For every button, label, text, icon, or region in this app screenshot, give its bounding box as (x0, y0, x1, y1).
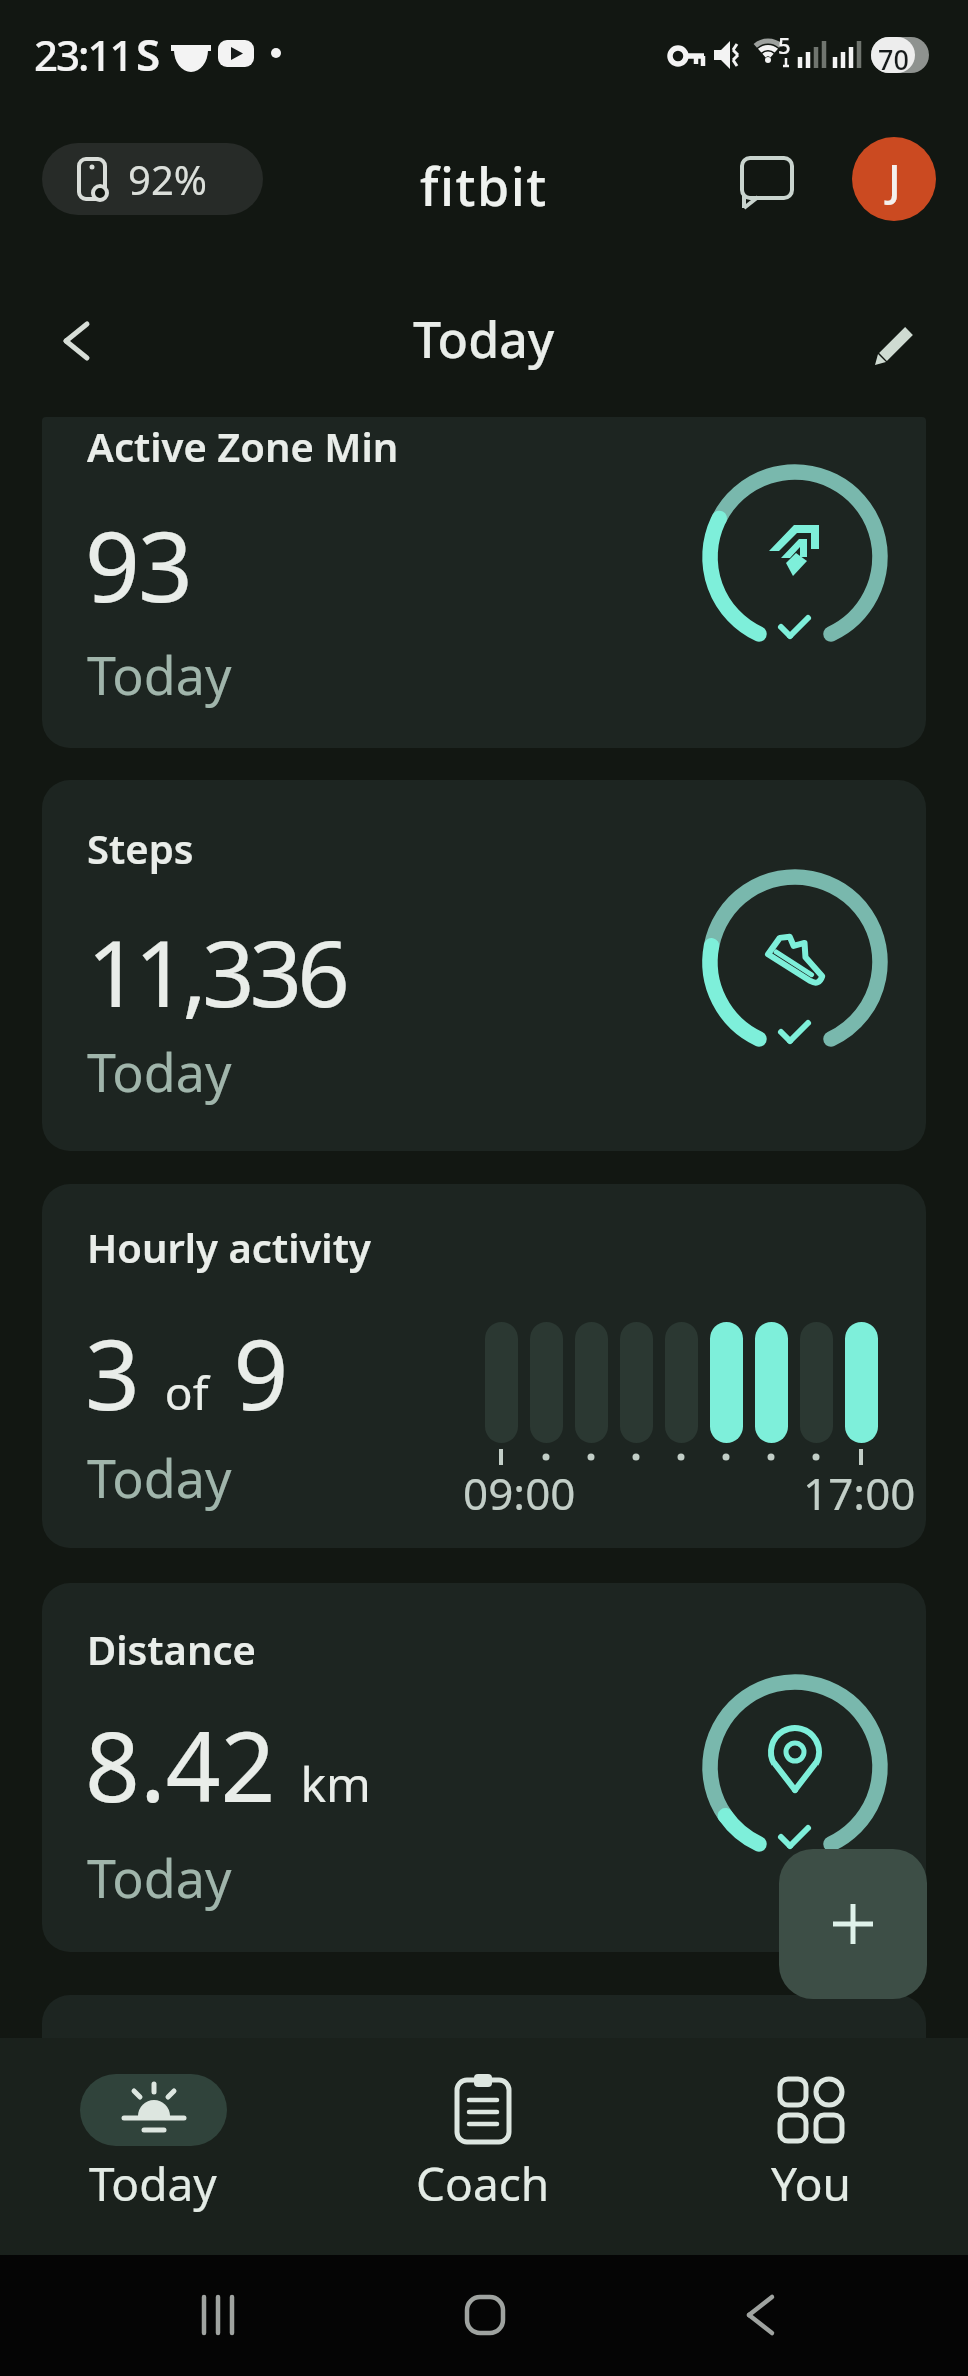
staticText: 3 of 9 (85, 1307, 289, 1438)
button[interactable] (50, 315, 102, 367)
button[interactable]: J (852, 137, 936, 221)
button[interactable] (42, 780, 926, 1151)
staticText: Today (87, 639, 232, 710)
staticText: Today (413, 305, 555, 373)
staticText: 92% (128, 152, 207, 206)
staticText: S (136, 24, 161, 84)
staticText: 17:00 (803, 1463, 916, 1523)
staticText: You (771, 2152, 851, 2215)
staticText: fitbit (420, 150, 548, 221)
staticText: Coach (416, 2152, 550, 2215)
staticText: Today (87, 1842, 232, 1913)
staticText: Distance (87, 1622, 256, 1676)
button[interactable] (862, 310, 926, 374)
button[interactable] (42, 1583, 926, 1952)
staticText: 8.42 km (85, 1699, 371, 1830)
button[interactable] (42, 1995, 926, 2055)
staticText: 93 (85, 499, 191, 630)
button[interactable]: 92% (42, 143, 263, 215)
staticText: 11,336 (87, 909, 345, 1034)
staticText: Today (87, 1036, 232, 1107)
staticText: 70 (878, 41, 909, 78)
staticText: Hourly activity (87, 1220, 371, 1274)
staticText: Steps (87, 821, 194, 875)
staticText: Today (87, 1442, 232, 1513)
staticText: 23:11 (34, 26, 132, 83)
button[interactable]: Coach (382, 2058, 584, 2248)
staticText: Today (89, 2152, 217, 2215)
staticText: 09:00 (463, 1463, 576, 1523)
staticText: Active Zone Min (87, 419, 399, 473)
button[interactable]: Today (52, 2058, 254, 2248)
button[interactable] (42, 1184, 926, 1548)
button[interactable] (170, 2267, 266, 2363)
staticText: J (888, 149, 901, 209)
button[interactable]: You (710, 2058, 912, 2248)
button[interactable] (42, 417, 926, 748)
button[interactable] (712, 2267, 808, 2363)
button[interactable] (779, 1849, 927, 1999)
button[interactable] (437, 2267, 533, 2363)
staticText: 5 (778, 30, 791, 60)
button[interactable] (733, 147, 799, 213)
